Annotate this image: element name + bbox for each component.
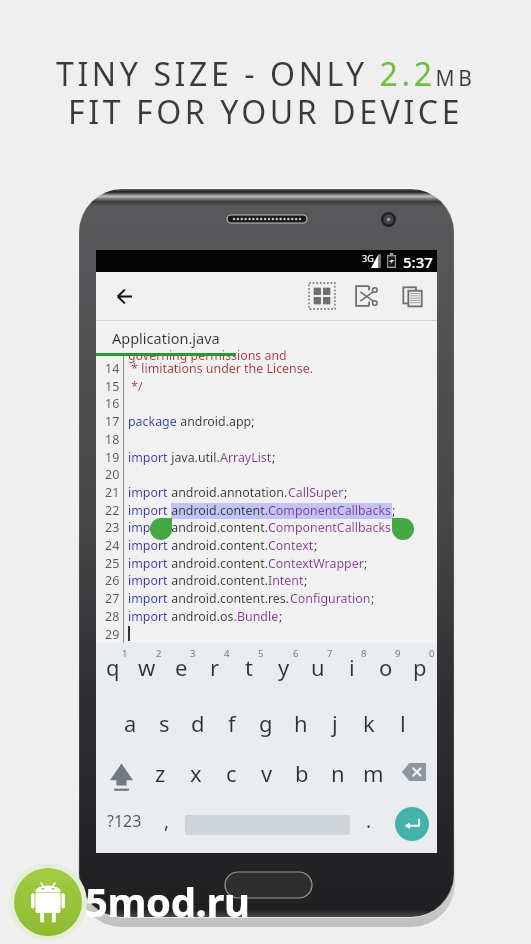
staticText: android.content. [168,537,268,554]
staticText: ; [304,572,308,589]
staticText: j [332,708,338,738]
button[interactable]: a [113,706,147,740]
staticText: package [128,413,177,430]
staticText: g [259,708,273,738]
button[interactable]: c [213,755,249,791]
staticText: import [128,590,168,607]
staticText: 7 [327,647,333,660]
staticText: Configuration [290,590,371,607]
staticText: v [261,758,273,788]
staticText: f [228,708,236,738]
staticText: 2; [392,519,403,536]
staticText: governing permissions and [128,347,287,364]
button[interactable]: 5 [232,644,266,692]
staticText: 14 [105,360,120,377]
staticText: 9 [395,647,401,660]
staticText: TINY SIZE - ONLY 2.2MB [56,52,476,96]
staticText: * limitations under the License. [128,360,313,377]
button[interactable]: s [147,706,181,740]
button[interactable]: . [352,803,386,839]
button[interactable]: ?123 [100,803,148,839]
button[interactable]: 3 [164,644,198,692]
staticText: p [413,652,427,682]
button[interactable]: , [150,803,184,839]
staticText: i [349,652,355,682]
staticText: u [311,652,325,682]
staticText: m [363,758,384,788]
staticText: import [128,449,168,466]
button[interactable]: 6 [267,644,301,692]
button[interactable]: Application.java [96,321,437,355]
button[interactable]: z [142,755,178,791]
button[interactable]: d [181,706,215,740]
staticText: l [400,708,406,738]
button[interactable]: 1 [96,644,130,692]
staticText: android.annotation. [168,484,288,501]
staticText: 17 [105,413,120,430]
button[interactable]: g [249,706,283,740]
button[interactable]: Android logo [14,868,82,936]
staticText: ContextWrapper [268,555,364,572]
button[interactable]: b [284,755,320,791]
button[interactable]: 2 [130,644,164,692]
staticText: k [363,708,375,738]
button[interactable]: Select all [302,276,342,316]
button[interactable]: 0 [403,644,437,692]
staticText: ComponentCallbacks [268,502,392,519]
staticText: CallSuper [288,484,344,501]
button[interactable]: 7 [301,644,335,692]
staticText: java.util. [168,449,220,466]
staticText: 20 [105,466,120,483]
staticText: q [106,652,120,682]
staticText: Context [268,537,314,554]
staticText: ComponentCallbacks [268,519,392,536]
button[interactable]: Cut [346,276,386,316]
button[interactable]: 9 [369,644,403,692]
other: Selection end handle [392,518,414,540]
staticText: Application.java [112,328,220,348]
button[interactable]: Backspace [391,751,437,795]
button[interactable]: x [178,755,214,791]
staticText: Intent [268,572,304,589]
staticText: android.os. [168,608,237,625]
button[interactable]: 8 [335,644,369,692]
staticText: 29 [105,626,120,643]
staticText: 3 [190,647,196,660]
staticText: 5 [258,647,264,660]
staticText: 5:37 [403,252,433,272]
staticText: a [124,708,137,738]
staticText: 1 [122,647,128,660]
staticText: c [226,758,237,788]
button[interactable]: h [284,706,318,740]
staticText: import [128,484,168,501]
button[interactable]: l [386,706,420,740]
staticText: 19 [105,449,120,466]
staticText: ?123 [107,810,142,832]
button[interactable]: m [355,755,391,791]
button[interactable]: 4 [198,644,232,692]
staticText: ; [364,555,368,572]
staticText: z [155,758,166,788]
button[interactable]: Back [104,276,144,316]
staticText: ; [344,484,348,501]
button[interactable]: f [215,706,249,740]
staticText: 24 [105,537,120,554]
staticText: 0 [429,647,435,660]
button[interactable]: j [318,706,352,740]
button[interactable]: k [352,706,386,740]
staticText: ; [314,537,318,554]
staticText: android.content. [168,572,268,589]
staticText: , [164,808,170,834]
button[interactable]: Copy [392,276,432,316]
button[interactable]: Enter [395,807,429,841]
staticText: ; [272,449,276,466]
button[interactable]: n [320,755,356,791]
button[interactable]: v [249,755,285,791]
staticText: android.content. [168,555,268,572]
staticText: x [190,758,202,788]
staticText: ; [392,502,396,519]
staticText: d [191,708,205,738]
button[interactable]: Shift [96,751,142,795]
staticText: import [128,555,168,572]
